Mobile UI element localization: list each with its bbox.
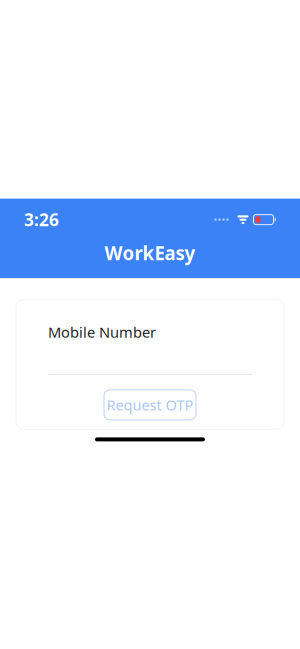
button[interactable]: Request OTP (104, 390, 196, 420)
staticText: WorkEasy (104, 241, 195, 265)
staticText: 3:26 (24, 208, 59, 231)
staticText: Request OTP (106, 395, 193, 415)
staticText: Mobile Number (48, 322, 156, 342)
